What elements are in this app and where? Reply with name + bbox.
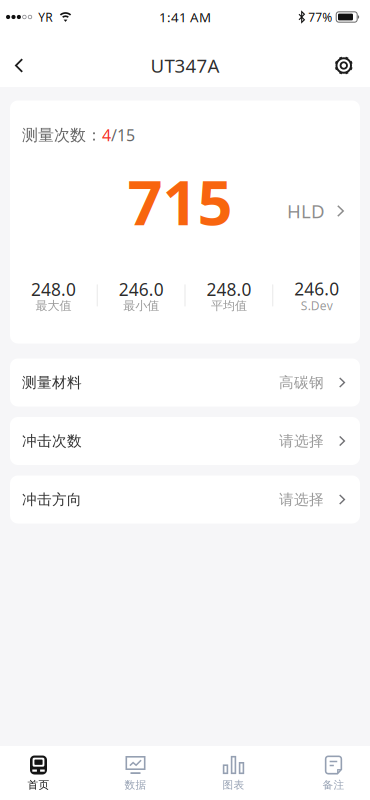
staticText: 测量次数： xyxy=(22,125,102,145)
staticText: 冲击方向 xyxy=(22,490,82,508)
staticText: 备注 xyxy=(322,778,344,792)
staticText: 1:41 AM xyxy=(159,8,211,26)
staticText: S.Dev xyxy=(301,298,333,314)
staticText: 246.0 xyxy=(119,278,164,301)
staticText: 248.0 xyxy=(206,278,251,301)
staticText: HLD xyxy=(287,199,325,223)
staticText: 4 xyxy=(102,124,111,146)
staticText: 测量材料 xyxy=(22,373,82,391)
staticText: 最小值 xyxy=(123,298,159,313)
staticText: 77% xyxy=(308,9,332,25)
staticText: 冲击次数 xyxy=(22,432,82,450)
staticText: 246.0 xyxy=(294,277,339,300)
staticText: 248.0 xyxy=(31,278,76,301)
staticText: 高碳钢 xyxy=(279,373,324,391)
staticText: 首页 xyxy=(27,778,49,792)
staticText: 715 xyxy=(127,161,232,242)
staticText: 平均值 xyxy=(211,298,247,313)
staticText: UT347A xyxy=(150,53,219,78)
staticText: 请选择 xyxy=(279,432,324,450)
staticText: 图表 xyxy=(222,778,244,792)
staticText: 最大值 xyxy=(35,298,71,313)
staticText: YR xyxy=(38,9,52,25)
staticText: /15 xyxy=(111,124,135,146)
staticText: 请选择 xyxy=(279,490,324,508)
staticText: 数据 xyxy=(124,778,146,792)
